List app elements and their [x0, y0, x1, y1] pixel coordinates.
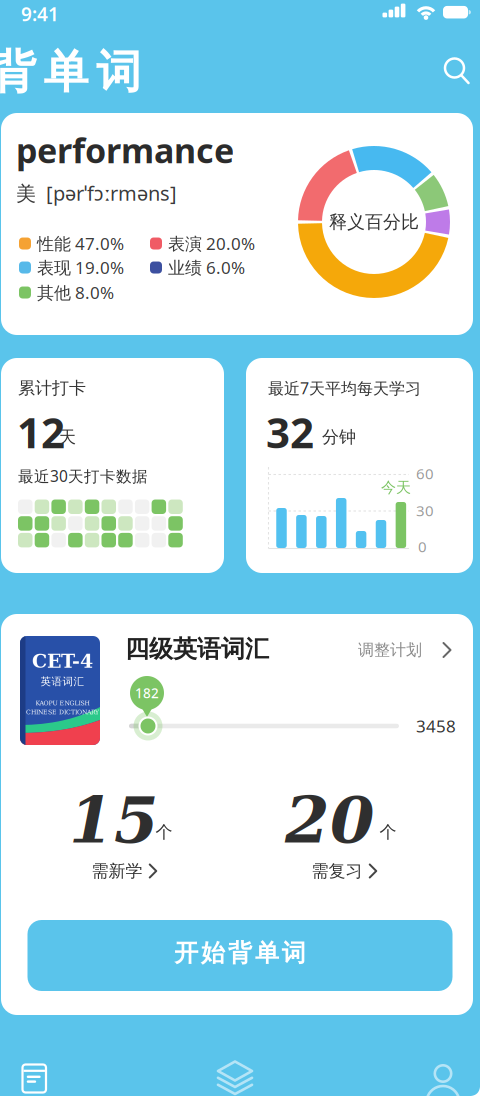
staticText: 词 — [96, 44, 141, 100]
staticText: 美 [pərˈfɔːrməns] — [16, 179, 177, 207]
staticText: 最近7天平均每天学习 — [268, 377, 421, 399]
staticText: 单 — [44, 44, 89, 100]
staticText: CET-4 — [32, 650, 93, 672]
staticText: 个 — [379, 821, 396, 843]
staticText: 累计打卡 — [18, 377, 86, 399]
staticText: 表演 20.0% — [168, 232, 255, 255]
staticText: 0 — [418, 536, 427, 557]
button[interactable] — [19, 1063, 49, 1093]
staticText: 30 — [416, 500, 434, 521]
staticText: 需新学 — [91, 860, 142, 882]
button[interactable]: 开 — [27, 920, 452, 991]
button[interactable] — [425, 1066, 461, 1096]
staticText: 天 — [59, 426, 76, 448]
staticText: 15 — [69, 782, 159, 858]
button[interactable] — [435, 49, 479, 93]
staticText: 单 — [255, 938, 279, 968]
staticText: 60 — [416, 463, 434, 484]
staticText: 开 — [174, 938, 198, 968]
staticText: 20 — [285, 782, 375, 858]
button[interactable]: 需新学 — [73, 851, 183, 891]
staticText: 12 — [17, 403, 65, 461]
staticText: 调整计划 — [358, 640, 422, 660]
staticText: 表现 19.0% — [37, 256, 124, 279]
staticText: 182 — [135, 684, 159, 702]
staticText: CHINESE DICTIONARY — [26, 708, 99, 716]
staticText: 性能 47.0% — [37, 232, 124, 255]
button[interactable]: 调整计划 — [346, 632, 456, 668]
staticText: 其他 8.0% — [37, 281, 114, 304]
staticText: 3458 — [416, 714, 456, 738]
staticText: 分钟 — [322, 426, 356, 448]
staticText: 需复习 — [311, 860, 362, 882]
staticText: KAOPU ENGLISH — [35, 699, 89, 707]
button[interactable] — [218, 1061, 252, 1095]
staticText: 四级英语词汇 — [125, 634, 269, 664]
staticText: 始 — [201, 938, 225, 968]
staticText: 释义百分比 — [329, 211, 419, 233]
staticText: 今天 — [381, 478, 411, 497]
staticText: 词 — [282, 938, 306, 968]
staticText: 英语词汇 — [40, 675, 84, 688]
staticText: 32 — [266, 403, 314, 461]
staticText: 业绩 6.0% — [168, 256, 245, 279]
staticText: 背 — [0, 44, 36, 100]
staticText: 9:41 — [21, 1, 59, 27]
staticText: 背 — [228, 938, 252, 968]
staticText: performance — [16, 127, 234, 173]
staticText: 个 — [155, 821, 172, 843]
button[interactable]: 需复习 — [293, 851, 403, 891]
staticText: 最近30天打卡数据 — [18, 465, 148, 486]
